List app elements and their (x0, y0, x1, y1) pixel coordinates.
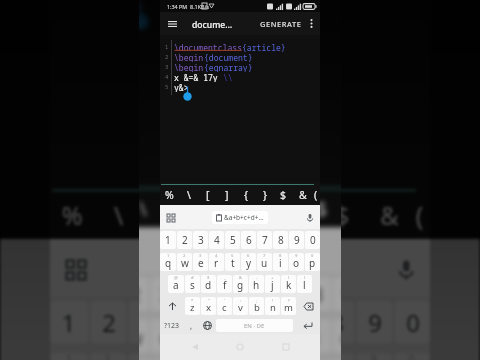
button[interactable]: ? (281, 297, 296, 315)
button[interactable]: @ (168, 275, 184, 293)
button[interactable]: 4 (209, 231, 224, 249)
button[interactable]: Voice input (390, 253, 421, 284)
button[interactable]: + (265, 275, 280, 293)
button[interactable]: $ (274, 185, 293, 205)
button[interactable]: * (185, 297, 200, 315)
button[interactable]: ?123 (160, 319, 183, 332)
button[interactable]: ( (411, 192, 430, 239)
button[interactable]: 9 (289, 231, 304, 249)
button[interactable]: 5 (211, 277, 240, 311)
button[interactable]: 9 (356, 301, 392, 344)
button[interactable]: 2 (177, 253, 192, 271)
button[interactable]: ] (196, 189, 232, 227)
button[interactable]: $ (201, 275, 216, 293)
button[interactable]: 8 (273, 231, 288, 249)
button[interactable]: { (230, 192, 276, 239)
button[interactable]: Emoji (184, 319, 199, 332)
button[interactable]: Home (229, 336, 251, 358)
button[interactable]: 0 (394, 301, 430, 344)
button[interactable]: ( (312, 185, 320, 205)
button[interactable]: 7 (257, 231, 272, 249)
button[interactable]: 4 (181, 319, 210, 353)
button[interactable]: 8 (303, 319, 331, 353)
button[interactable]: [ (198, 185, 217, 205)
button[interactable]: 5 (225, 231, 240, 249)
button[interactable]: 4 (209, 253, 224, 271)
button[interactable]: Enter (294, 319, 320, 332)
button[interactable]: 2 (177, 231, 192, 249)
button[interactable]: [ (160, 189, 196, 227)
button[interactable]: 3 (193, 253, 208, 271)
button[interactable]: 6 (242, 319, 270, 353)
button[interactable]: & (293, 185, 312, 205)
button[interactable]: 7 (257, 253, 272, 271)
button[interactable]: Voice input (303, 211, 316, 224)
button[interactable]: 4 (166, 301, 202, 344)
button[interactable]: 6 (241, 253, 256, 271)
button[interactable]: &a+b+c+d+… (212, 211, 268, 224)
button[interactable]: } (268, 189, 305, 227)
button[interactable]: ' (217, 297, 232, 315)
button[interactable]: 3 (151, 277, 179, 311)
button[interactable]: Open navigation drawer (163, 15, 181, 32)
button[interactable]: 7 (280, 301, 316, 344)
button[interactable]: Back (184, 336, 206, 358)
button[interactable]: 8 (303, 277, 331, 311)
button[interactable]: Keyboard tools (59, 253, 90, 284)
button[interactable]: _ (217, 275, 232, 293)
button[interactable]: - (249, 275, 264, 293)
button[interactable]: $ (321, 192, 366, 239)
button[interactable]: 5 (211, 319, 240, 353)
button[interactable]: & (366, 192, 411, 239)
button[interactable]: { (232, 189, 268, 227)
button[interactable]: & (233, 275, 248, 293)
button[interactable]: 2 (139, 319, 149, 353)
button[interactable]: $ (305, 189, 341, 227)
button[interactable]: 3 (193, 231, 208, 249)
button[interactable]: 0 (305, 231, 320, 249)
button[interactable]: 4 (181, 277, 210, 311)
button[interactable]: ! (265, 297, 280, 315)
button[interactable]: 1 (50, 301, 88, 344)
button[interactable]: " (201, 297, 216, 315)
button[interactable]: 3 (151, 319, 179, 353)
button[interactable]: 3 (128, 301, 164, 344)
button[interactable]: 6 (242, 301, 278, 344)
button[interactable]: 1 (160, 231, 176, 249)
button[interactable]: ] (185, 192, 230, 239)
button[interactable]: ] (217, 185, 236, 205)
button[interactable]: 6 (242, 277, 270, 311)
button[interactable]: 7 (272, 319, 301, 353)
button[interactable]: 7 (272, 277, 301, 311)
button[interactable]: ) (297, 275, 312, 293)
button[interactable]: 8 (273, 253, 288, 271)
button[interactable]: [ (140, 192, 185, 239)
button[interactable]: Recent apps (275, 336, 297, 358)
button[interactable]: Switch language (200, 319, 215, 332)
button[interactable]: # (185, 275, 200, 293)
button[interactable]: More options (304, 15, 318, 32)
button[interactable]: &a+b+c+d+… (173, 253, 306, 284)
button[interactable]: Keyboard tools (164, 211, 177, 224)
button[interactable]: 8 (318, 353, 354, 360)
button[interactable]: } (276, 192, 321, 239)
button[interactable]: 3 (128, 353, 164, 360)
button[interactable]: &a+b+c+d+… (187, 239, 293, 264)
button[interactable]: 9 (333, 319, 341, 353)
button[interactable]: ; (249, 297, 264, 315)
button[interactable]: \ (95, 192, 140, 239)
button[interactable]: 2 (139, 277, 149, 311)
button[interactable]: 0 (305, 253, 320, 271)
button[interactable]: 8 (318, 301, 354, 344)
button[interactable]: 6 (241, 231, 256, 249)
button[interactable]: 1 (160, 253, 176, 271)
